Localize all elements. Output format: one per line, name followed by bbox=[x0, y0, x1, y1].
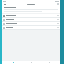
button[interactable] bbox=[2, 6, 60, 13]
button[interactable]: Item 3 bbox=[2, 22, 60, 25]
button[interactable]: Tab 1 bbox=[4, 61, 22, 64]
button[interactable]: Item 2 bbox=[2, 18, 60, 21]
button[interactable]: Tab 3 bbox=[40, 61, 58, 64]
button[interactable]: Menu bbox=[3, 3, 6, 6]
button[interactable]: Item 4 bbox=[2, 26, 60, 29]
button[interactable]: Item 1 bbox=[2, 14, 60, 17]
button[interactable]: Tab 2 bbox=[22, 61, 40, 64]
